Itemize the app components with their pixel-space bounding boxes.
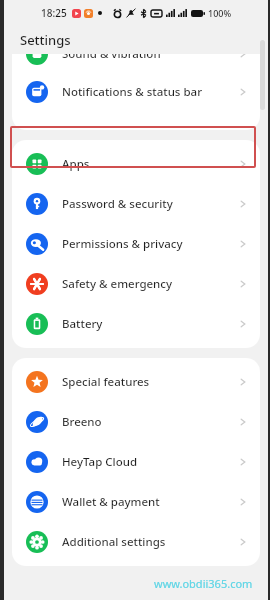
other: Open Safety & emergency (238, 279, 248, 289)
staticText: Battery (62, 316, 238, 332)
other: Open HeyTap Cloud (238, 457, 248, 467)
button[interactable]: Additional settings (12, 522, 260, 562)
button[interactable]: Password & security (12, 184, 260, 224)
button[interactable]: Wallet & payment (12, 482, 260, 522)
button[interactable]: Sound & vibration (12, 54, 260, 74)
other: Open Password & security (238, 199, 248, 209)
staticText: Sound & vibration (62, 54, 238, 62)
staticText: 100% (208, 7, 232, 19)
button[interactable]: Notifications & status bar (12, 74, 260, 110)
button[interactable]: Apps (12, 144, 260, 184)
button[interactable]: Breeno (12, 402, 260, 442)
staticText: Password & security (62, 196, 238, 212)
staticText: Special features (62, 374, 238, 390)
button[interactable]: Special features (12, 362, 260, 402)
staticText: Wallet & payment (62, 494, 238, 510)
other: Open Additional settings (238, 537, 248, 547)
other: Open Permissions & privacy (238, 239, 248, 249)
other: Open Notifications & status bar (238, 87, 248, 97)
staticText: Notifications & status bar (62, 84, 238, 100)
other: Open Breeno (238, 417, 248, 427)
button[interactable]: Permissions & privacy (12, 224, 260, 264)
other: Open Sound & vibration (238, 54, 248, 59)
staticText: Safety & emergency (62, 276, 238, 292)
staticText: Breeno (62, 414, 238, 430)
button[interactable]: Safety & emergency (12, 264, 260, 304)
other: Open Wallet & payment (238, 497, 248, 507)
other: Open Apps (238, 159, 248, 169)
button[interactable]: HeyTap Cloud (12, 442, 260, 482)
staticText: Settings (20, 31, 71, 49)
button[interactable]: Battery (12, 304, 260, 344)
staticText: Permissions & privacy (62, 236, 238, 252)
other: Open Special features (238, 377, 248, 387)
staticText: Apps (62, 156, 238, 172)
staticText: HeyTap Cloud (62, 454, 238, 470)
staticText: www.obdii365.com (154, 576, 253, 591)
other: Open Battery (238, 319, 248, 329)
staticText: 18:25 (41, 6, 67, 20)
staticText: Additional settings (62, 534, 238, 550)
